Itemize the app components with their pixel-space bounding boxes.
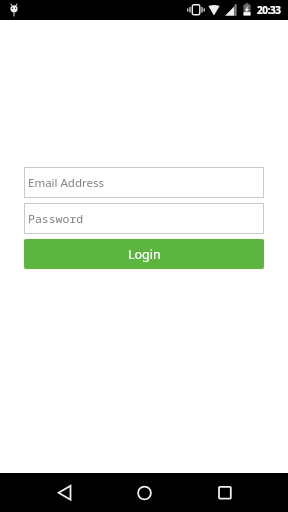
button[interactable]: Password bbox=[24, 203, 264, 234]
button[interactable]: Login bbox=[24, 239, 264, 269]
button[interactable] bbox=[210, 478, 239, 507]
staticText: Password bbox=[28, 211, 84, 227]
button[interactable] bbox=[50, 478, 79, 507]
button[interactable] bbox=[130, 478, 159, 507]
staticText: 20:33 bbox=[257, 3, 281, 17]
staticText: Email Address bbox=[28, 175, 105, 191]
staticText: Login bbox=[128, 246, 161, 263]
button[interactable]: Email Address bbox=[24, 167, 264, 198]
